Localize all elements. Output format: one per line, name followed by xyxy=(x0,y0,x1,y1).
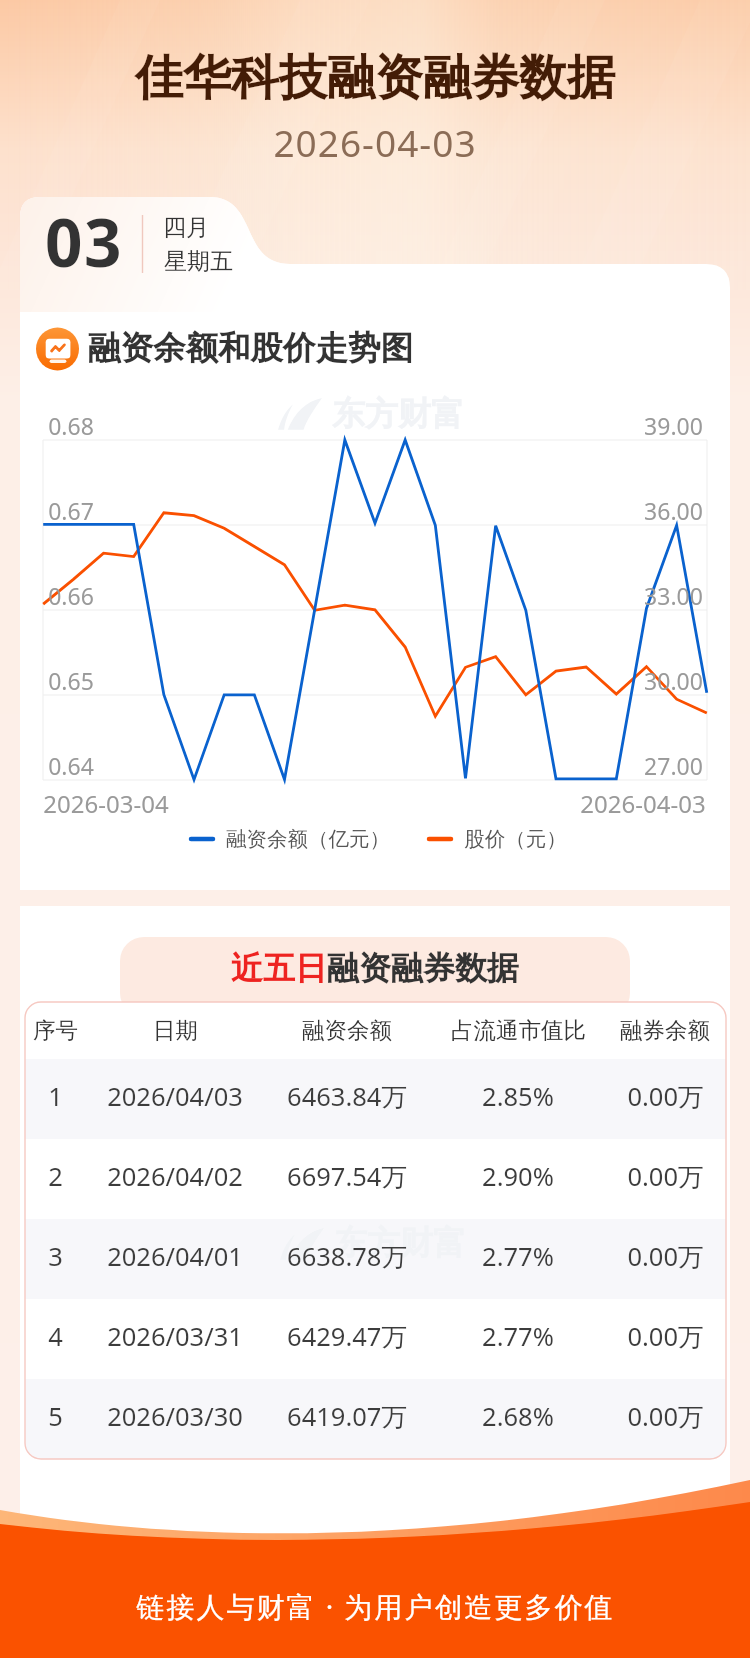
staticText: 东方财富 xyxy=(332,393,464,435)
staticText: 融资余额（亿元） xyxy=(226,826,390,852)
staticText: 2026/04/01 xyxy=(107,1239,243,1274)
staticText: 融资余额 xyxy=(302,1016,392,1044)
staticText: 2 xyxy=(48,1159,63,1194)
staticText: 2026-04-03 xyxy=(273,117,477,167)
staticText: 星期五 xyxy=(164,247,233,276)
staticText: 3 xyxy=(48,1239,63,1274)
staticText: 2026-04-03 xyxy=(580,787,706,820)
button[interactable]: Date 03 April Friday xyxy=(20,197,290,264)
button[interactable] xyxy=(25,1299,726,1379)
button[interactable] xyxy=(20,264,730,890)
staticText: 0.00万 xyxy=(627,1079,704,1114)
button[interactable] xyxy=(25,1139,726,1219)
staticText: 27.00 xyxy=(644,750,703,781)
staticText: 0.67 xyxy=(48,495,94,526)
staticText: 2026-03-04 xyxy=(43,787,169,820)
staticText: 6419.07万 xyxy=(287,1399,407,1434)
staticText: 6429.47万 xyxy=(287,1319,407,1354)
button[interactable]: Footer slogan xyxy=(0,1530,750,1658)
staticText: 36.00 xyxy=(644,495,703,526)
button[interactable] xyxy=(25,1219,726,1299)
staticText: 占流通市值比 xyxy=(451,1016,586,1044)
staticText: 03 xyxy=(45,197,123,286)
staticText: 2.90% xyxy=(482,1159,554,1194)
staticText: 6697.54万 xyxy=(287,1159,407,1194)
staticText: 0.64 xyxy=(48,750,94,781)
staticText: 佳华科技融资融券数据 xyxy=(135,48,615,108)
button[interactable]: Legend margin balance xyxy=(185,824,390,854)
staticText: 6638.78万 xyxy=(287,1239,407,1274)
staticText: 6463.84万 xyxy=(287,1079,407,1114)
staticText: 0.00万 xyxy=(627,1399,704,1434)
staticText: 2026/03/30 xyxy=(107,1399,243,1434)
staticText: 四月 xyxy=(163,213,209,242)
staticText: 东方财富 xyxy=(334,1222,466,1264)
staticText: 30.00 xyxy=(644,665,703,696)
button[interactable] xyxy=(25,1059,726,1139)
staticText: 融资余额和股价走势图 xyxy=(88,328,413,369)
staticText: 近五日融资融券数据 xyxy=(231,948,519,988)
staticText: 0.00万 xyxy=(627,1319,704,1354)
staticText: 0.68 xyxy=(48,410,94,441)
staticText: 5 xyxy=(48,1399,63,1434)
staticText: 4 xyxy=(48,1319,63,1354)
staticText: 序号 xyxy=(33,1016,78,1044)
staticText: 日期 xyxy=(153,1016,198,1044)
staticText: 1 xyxy=(48,1079,63,1114)
staticText: 0.65 xyxy=(48,665,94,696)
staticText: 2.77% xyxy=(482,1319,554,1354)
staticText: 2.68% xyxy=(482,1399,554,1434)
staticText: 股价（元） xyxy=(464,826,567,852)
button[interactable] xyxy=(25,1379,726,1459)
staticText: 33.00 xyxy=(644,580,703,611)
staticText: 融券余额 xyxy=(620,1016,710,1044)
staticText: 2.85% xyxy=(482,1079,554,1114)
staticText: 39.00 xyxy=(644,410,703,441)
staticText: 0.66 xyxy=(48,580,94,611)
staticText: 2026/03/31 xyxy=(107,1319,243,1354)
staticText: 0.00万 xyxy=(627,1239,704,1274)
staticText: 2.77% xyxy=(482,1239,554,1274)
staticText: 2026/04/03 xyxy=(107,1079,243,1114)
button[interactable]: Legend share price xyxy=(423,824,563,854)
staticText: 0.00万 xyxy=(627,1159,704,1194)
staticText: 2026/04/02 xyxy=(107,1159,243,1194)
button[interactable]: Trend chart xyxy=(36,327,80,371)
staticText: 链接人与财富 · 为用户创造更多价值 xyxy=(136,1587,615,1625)
